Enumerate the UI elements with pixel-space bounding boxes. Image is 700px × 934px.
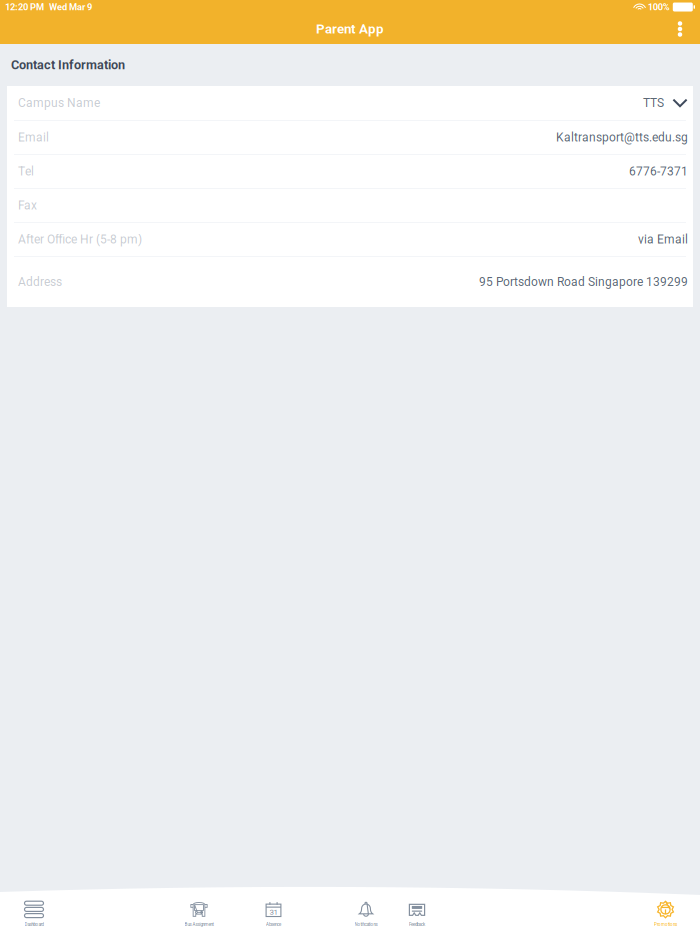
staticText: Bus Assignment <box>184 922 213 927</box>
staticText: Address <box>18 275 62 289</box>
button[interactable]: Tel <box>7 155 693 188</box>
staticText: 100% <box>648 1 670 12</box>
button[interactable]: Bus Assignment <box>166 893 232 933</box>
staticText: Feedback <box>409 922 425 927</box>
staticText: Email <box>18 130 49 145</box>
staticText: Tel <box>18 164 34 179</box>
button[interactable]: After Office Hr (5-8 pm) <box>7 223 693 256</box>
staticText: TTS <box>643 96 664 110</box>
button[interactable]: 31 <box>240 893 306 933</box>
staticText: Absence <box>266 922 281 927</box>
staticText: 6776-7371 <box>629 164 688 179</box>
staticText: Parent App <box>316 21 384 37</box>
staticText: via Email <box>638 232 688 247</box>
staticText: Promotions <box>654 922 677 927</box>
button[interactable]: Email <box>7 121 693 154</box>
button[interactable]: Campus Name <box>7 86 693 120</box>
staticText: Campus Name <box>18 96 100 110</box>
staticText: Kaltransport@tts.edu.sg <box>556 130 688 145</box>
staticText: 31 <box>269 907 277 917</box>
staticText: Wed Mar 9 <box>49 1 92 12</box>
staticText: After Office Hr (5-8 pm) <box>18 232 142 247</box>
staticText: 12:20 PM <box>5 1 44 12</box>
staticText: Notifications <box>354 922 377 927</box>
button[interactable]: Dashboard <box>1 893 67 933</box>
button[interactable]: Address <box>7 257 693 307</box>
button[interactable]: More options <box>666 15 694 43</box>
button[interactable]: Notifications <box>333 893 399 933</box>
staticText: Contact Information <box>11 58 125 72</box>
staticText: Dashboard <box>24 922 43 927</box>
button[interactable]: Promotions <box>632 893 698 933</box>
staticText: Fax <box>18 198 37 213</box>
staticText: 95 Portsdown Road Singapore 139299 <box>479 275 688 289</box>
button[interactable]: Feedback <box>384 893 450 933</box>
